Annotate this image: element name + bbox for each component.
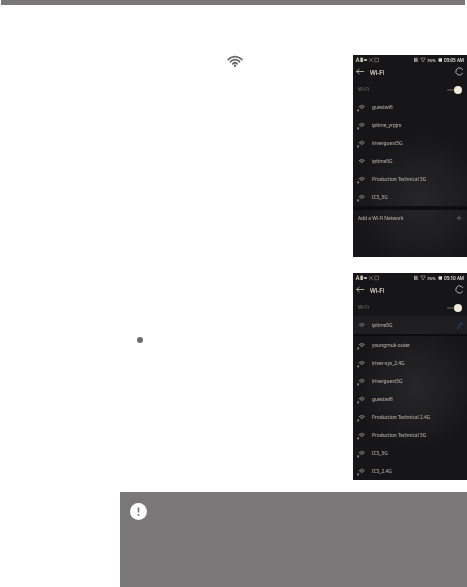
button[interactable]: Production Technical 5G — [357, 426, 463, 444]
button[interactable]: Wi-Fi — [358, 80, 462, 98]
staticText: guestwifi — [372, 396, 393, 403]
button[interactable]: Wi-Fi — [358, 298, 462, 316]
button[interactable]: ICS_5G — [357, 444, 463, 462]
staticText: ICS_2.4G — [372, 468, 392, 475]
button[interactable] — [120, 492, 467, 587]
staticText: iptime5G — [372, 158, 393, 165]
staticText: iptime_yrpjm — [372, 122, 402, 129]
staticText: ICS_5G — [372, 450, 388, 457]
button[interactable]: iptime5G — [357, 316, 464, 334]
staticText: 76% — [427, 57, 436, 63]
button[interactable]: ICS_2.4G — [357, 462, 463, 480]
staticText: Wi-Fi — [370, 68, 385, 76]
staticText: Add a Wi-Fi Network — [358, 215, 404, 222]
button[interactable]: iptime5G — [357, 152, 463, 170]
staticText: Production Technical 5G — [372, 176, 427, 183]
button[interactable]: Add a Wi-Fi Network — [358, 210, 462, 226]
staticText: iriverguest5G — [372, 378, 403, 385]
staticText: 76% — [427, 275, 436, 281]
staticText: 05:10 AM — [444, 275, 465, 281]
button[interactable]: Back — [355, 284, 366, 295]
button[interactable]: ICS_5G — [357, 188, 463, 206]
button[interactable]: Edit network — [456, 321, 464, 329]
button[interactable]: Production Technical 5G — [357, 170, 463, 188]
button[interactable]: Back — [355, 66, 366, 77]
staticText: Wi-Fi — [370, 286, 385, 294]
staticText: youngmuk-outer — [372, 342, 411, 349]
staticText: iriver-sys_2.4G — [372, 360, 405, 367]
button[interactable]: iriverguest5G — [357, 134, 463, 152]
button[interactable]: youngmuk-outer — [357, 336, 463, 354]
button[interactable]: iriver-sys_2.4G — [357, 354, 463, 372]
staticText: iptime5G — [372, 322, 393, 329]
button[interactable]: guestwifi — [357, 390, 463, 408]
button[interactable]: guestwifi — [357, 98, 463, 116]
staticText: guestwifi — [372, 104, 393, 111]
staticText: Production Technical 2.4G — [372, 414, 431, 421]
button[interactable]: iriverguest5G — [357, 372, 463, 390]
button[interactable]: Production Technical 2.4G — [357, 408, 463, 426]
button[interactable]: iptime_yrpjm — [357, 116, 463, 134]
button[interactable]: Refresh — [454, 284, 465, 295]
staticText: Production Technical 5G — [372, 432, 427, 439]
button[interactable]: Refresh — [454, 66, 465, 77]
staticText: iriverguest5G — [372, 140, 403, 147]
staticText: Wi-Fi — [358, 86, 369, 93]
staticText: ICS_5G — [372, 194, 388, 201]
staticText: Wi-Fi — [358, 304, 369, 311]
staticText: 05:05 AM — [444, 57, 465, 63]
